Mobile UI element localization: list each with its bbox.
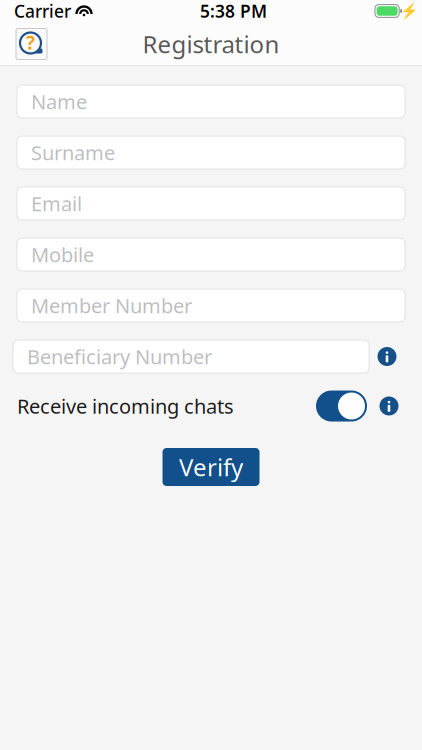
button[interactable]: Help xyxy=(15,27,48,60)
staticText: Receive incoming chats xyxy=(17,393,234,419)
staticText: Mobile xyxy=(31,241,94,268)
staticText: Name xyxy=(31,88,87,115)
staticText: Registration xyxy=(142,28,279,60)
staticText: ⚡ xyxy=(400,3,418,19)
staticText: Surname xyxy=(31,139,115,166)
staticText: Beneficiary Number xyxy=(27,343,212,370)
staticText: 5:38 PM xyxy=(200,0,267,22)
button[interactable]: More information xyxy=(373,342,401,370)
staticText: Member Number xyxy=(31,292,192,319)
staticText: Verify xyxy=(179,451,243,483)
staticText: ? xyxy=(26,30,35,55)
button[interactable]: Verify xyxy=(162,448,259,486)
staticText: Carrier xyxy=(14,0,71,22)
staticText: Email xyxy=(31,190,82,217)
button[interactable]: More information xyxy=(375,392,403,420)
button[interactable]: Receive incoming chats xyxy=(316,390,367,421)
